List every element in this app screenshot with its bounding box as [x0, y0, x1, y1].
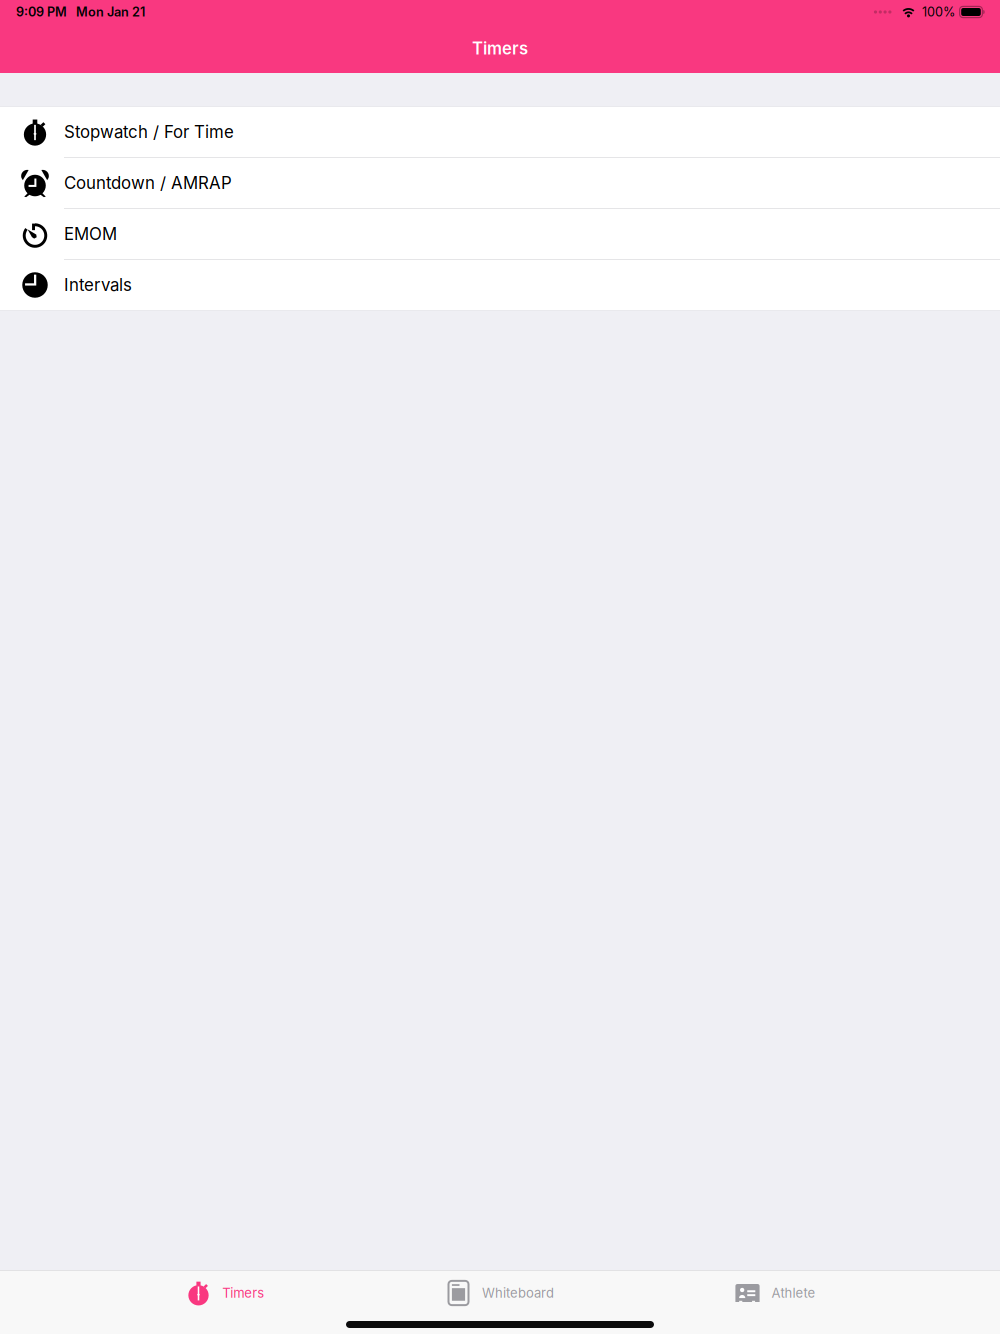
- staticText: 9:09 PM: [16, 4, 67, 20]
- staticText: Timers: [472, 38, 528, 59]
- staticText: Intervals: [64, 275, 132, 295]
- button[interactable]: Intervals: [0, 260, 1000, 310]
- button[interactable]: EMOM: [0, 209, 1000, 260]
- button[interactable]: Whiteboard: [362, 1271, 637, 1315]
- staticText: EMOM: [64, 224, 117, 244]
- staticText: Whiteboard: [482, 1285, 554, 1301]
- staticText: Athlete: [771, 1285, 815, 1301]
- button[interactable]: Stopwatch / For Time: [0, 107, 1000, 158]
- staticText: Countdown / AMRAP: [64, 173, 232, 193]
- button[interactable]: Timers: [87, 1271, 362, 1315]
- staticText: 100%: [922, 4, 955, 20]
- staticText: Timers: [222, 1285, 264, 1301]
- button[interactable]: Athlete: [637, 1271, 912, 1315]
- button[interactable]: Countdown / AMRAP: [0, 158, 1000, 209]
- staticText: Stopwatch / For Time: [64, 122, 234, 142]
- staticText: Mon Jan 21: [76, 4, 145, 20]
